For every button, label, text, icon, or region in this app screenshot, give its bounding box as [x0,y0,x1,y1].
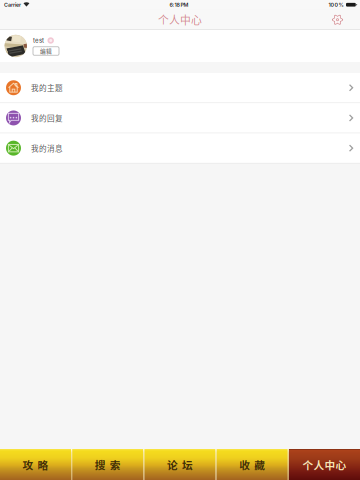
button[interactable]: 我的消息 [0,133,360,163]
staticText: 100% [328,1,343,8]
button[interactable]: 论坛 [144,449,215,480]
button[interactable]: 个人中心 [289,449,360,480]
button[interactable]: 我的回复 [0,103,360,133]
staticText: Carrier [4,1,21,8]
button[interactable]: 收藏 [217,449,288,480]
button[interactable]: 编辑 [33,47,59,55]
staticText: 攻略 [23,457,49,472]
button[interactable]: 攻略 [0,449,71,480]
staticText: 搜索 [95,457,121,472]
staticText: 6:18 PM [169,1,188,8]
staticText: 我的消息 [31,143,63,154]
staticText: 编辑 [40,47,52,55]
staticText: test [33,37,44,44]
staticText: 个人中心 [158,12,202,27]
staticText: 我的主题 [31,82,63,93]
staticText: 收藏 [239,457,265,472]
staticText: 我的回复 [31,112,63,123]
button[interactable]: Profile photo [4,35,27,57]
staticText: 个人中心 [302,457,346,472]
button[interactable]: 我的主题 [0,73,360,102]
button[interactable]: 搜索 [72,449,143,480]
button[interactable]: Settings [332,14,360,25]
staticText: 论坛 [167,457,193,472]
